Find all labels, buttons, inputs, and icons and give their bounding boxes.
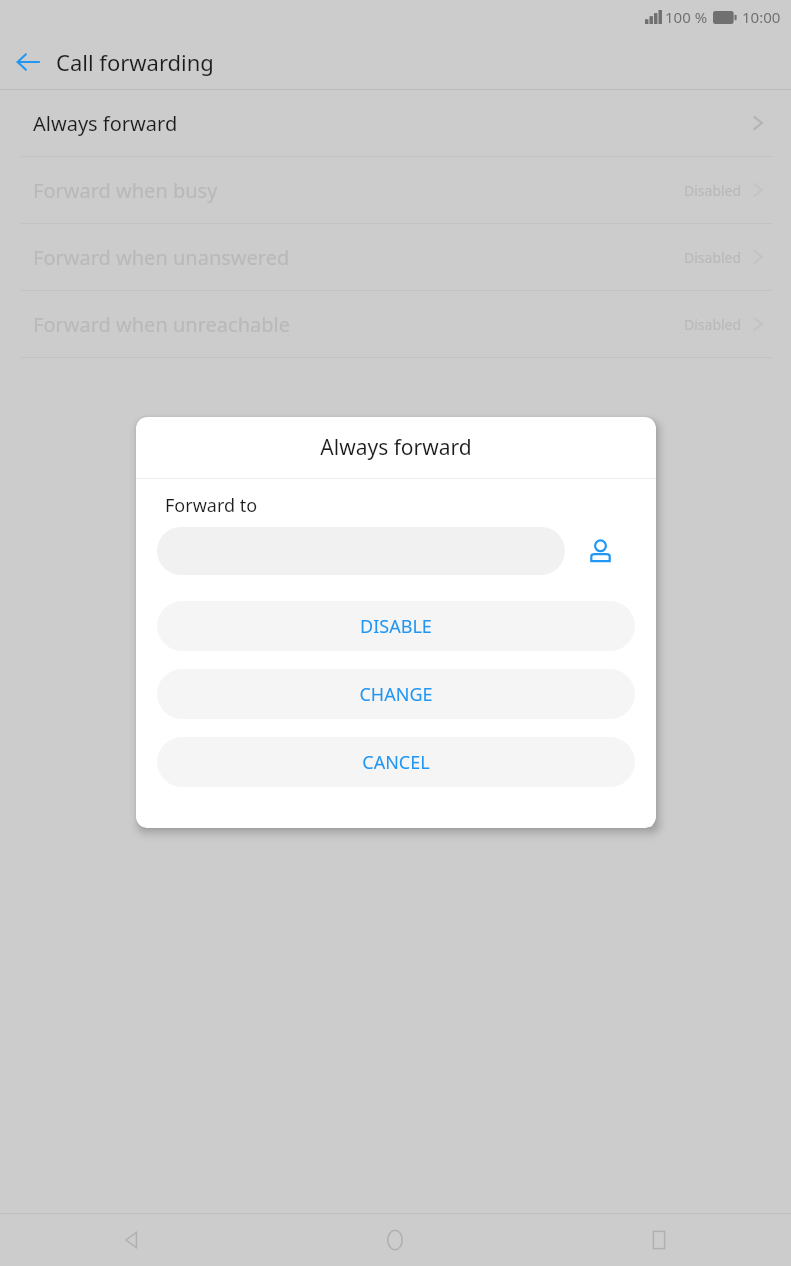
- button[interactable]: Always forward: [0, 90, 791, 156]
- staticText: CHANGE: [359, 682, 433, 707]
- staticText: Forward to: [165, 493, 258, 518]
- staticText: Disabled: [684, 181, 742, 200]
- staticText: Always forward: [320, 433, 472, 462]
- staticText: Call forwarding: [56, 47, 214, 77]
- button[interactable]: DISABLE: [157, 601, 635, 651]
- staticText: Forward when unreachable: [33, 311, 684, 338]
- staticText: Forward when busy: [33, 177, 684, 204]
- staticText: CANCEL: [362, 750, 430, 775]
- staticText: Forward when unanswered: [33, 244, 684, 271]
- button[interactable]: CHANGE: [157, 669, 635, 719]
- staticText: Disabled: [684, 248, 742, 267]
- staticText: Always forward: [33, 110, 750, 137]
- staticText: 10:00: [742, 7, 781, 27]
- button[interactable]: Back: [0, 34, 56, 89]
- button[interactable]: CANCEL: [157, 737, 635, 787]
- staticText: 100 %: [665, 7, 708, 27]
- button[interactable]: Pick contact: [578, 529, 622, 573]
- staticText: Disabled: [684, 315, 742, 334]
- staticText: DISABLE: [360, 614, 432, 639]
